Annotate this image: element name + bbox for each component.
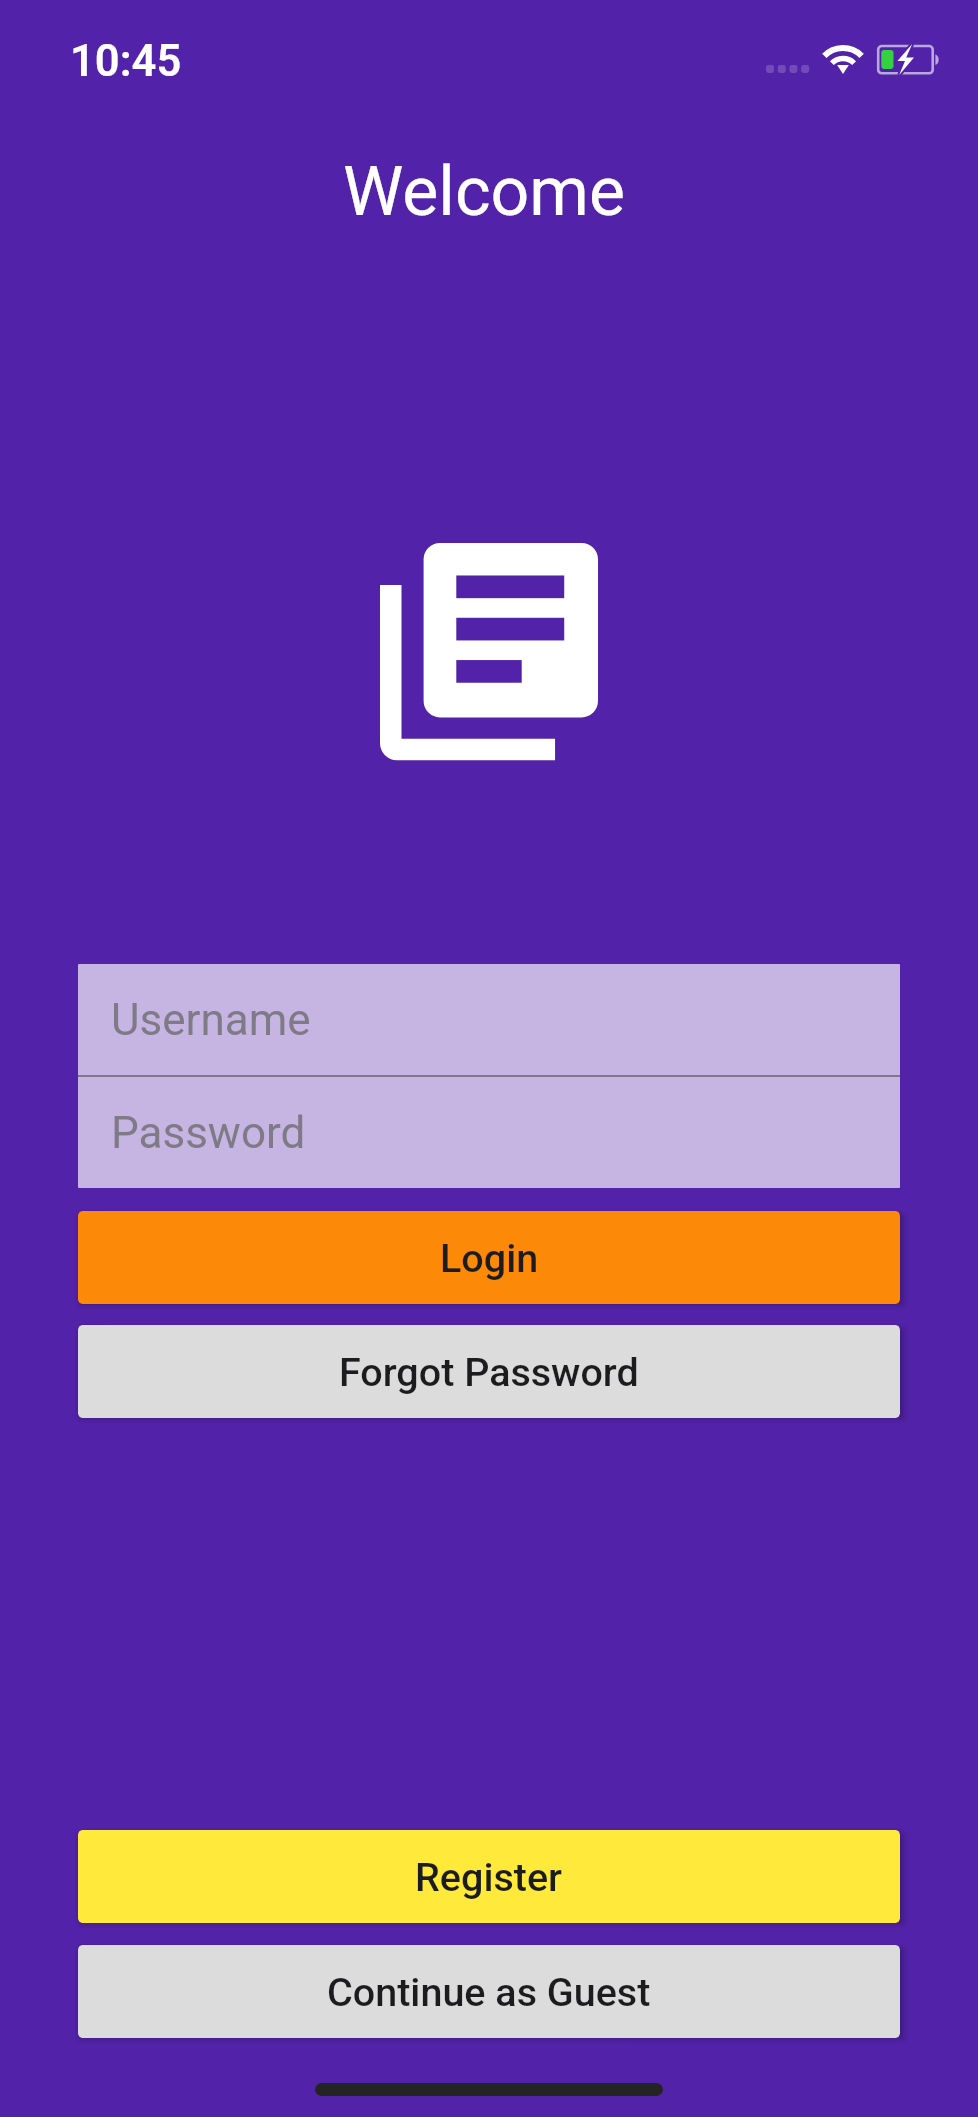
button[interactable]: Password	[78, 1077, 900, 1188]
staticText: Forgot Password	[339, 1349, 639, 1395]
other: App logo	[380, 543, 598, 761]
staticText: Username	[111, 994, 311, 1046]
staticText: Welcome	[343, 152, 625, 232]
button[interactable]: Register	[78, 1830, 900, 1923]
staticText: Continue as Guest	[327, 1969, 651, 2015]
button[interactable]: Login	[78, 1211, 900, 1304]
staticText: Login	[440, 1235, 539, 1281]
button[interactable]: Forgot Password	[78, 1325, 900, 1418]
button[interactable]: Continue as Guest	[78, 1945, 900, 2038]
button[interactable]: Username	[78, 964, 900, 1075]
staticText: Register	[415, 1854, 563, 1900]
staticText: 10:45	[70, 36, 182, 87]
staticText: Password	[111, 1107, 306, 1159]
